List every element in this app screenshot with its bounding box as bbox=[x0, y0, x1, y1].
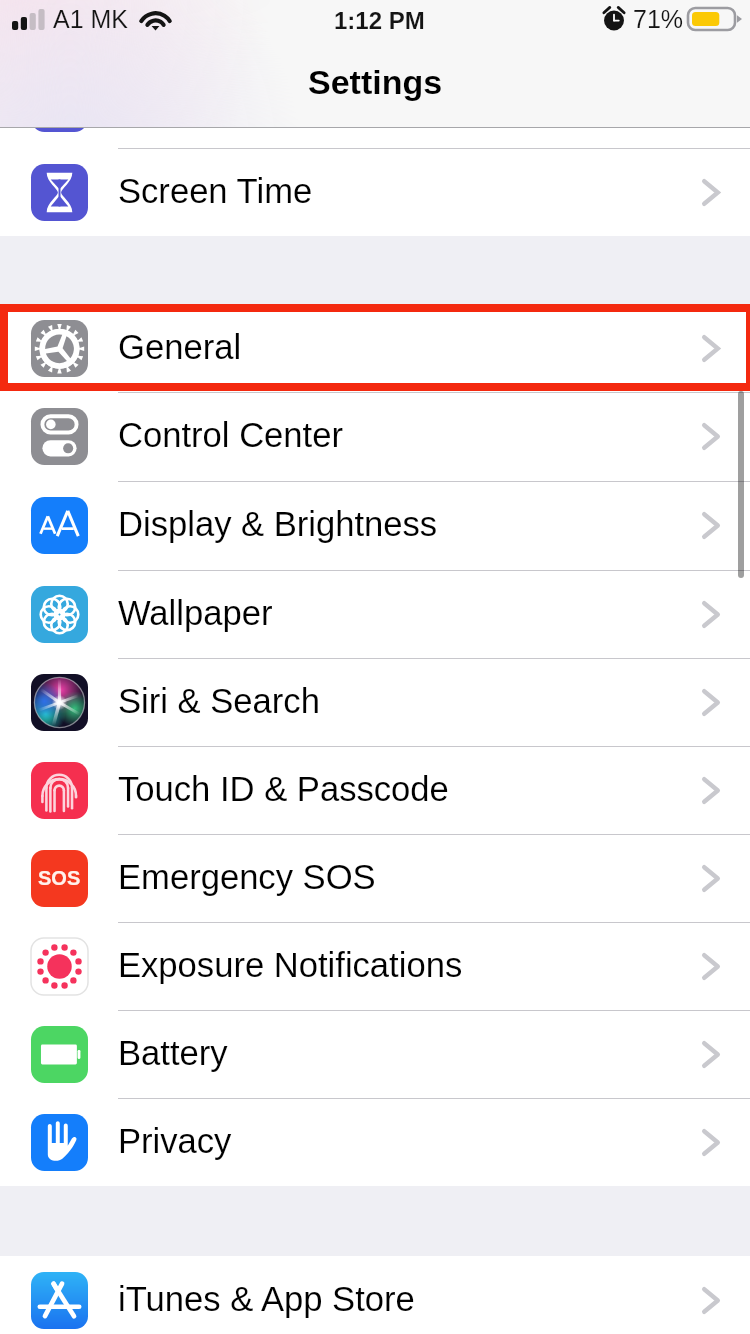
button[interactable]: Privacy bbox=[0, 1098, 750, 1186]
button[interactable]: Exposure Notifications bbox=[0, 922, 750, 1010]
staticText: A1 MK bbox=[53, 5, 129, 33]
staticText: Touch ID & Passcode bbox=[118, 770, 449, 809]
staticText: General bbox=[118, 328, 242, 367]
staticText: Privacy bbox=[118, 1122, 232, 1161]
staticText: Emergency SOS bbox=[118, 858, 376, 897]
staticText: Settings bbox=[308, 63, 443, 101]
button[interactable]: Control Center bbox=[0, 392, 750, 481]
staticText: Exposure Notifications bbox=[118, 946, 463, 985]
staticText: Wallpaper bbox=[118, 594, 273, 633]
button[interactable]: Display & Brightness bbox=[0, 481, 750, 570]
staticText: 1:12 PM bbox=[334, 7, 425, 34]
staticText: 71% bbox=[633, 5, 684, 33]
button[interactable]: General bbox=[0, 304, 750, 392]
staticText: Display & Brightness bbox=[118, 505, 438, 544]
staticText: Control Center bbox=[118, 416, 343, 455]
button[interactable]: Screen Time bbox=[0, 148, 750, 236]
button[interactable]: iTunes & App Store bbox=[0, 1256, 750, 1334]
button[interactable]: Siri & Search bbox=[0, 658, 750, 746]
button[interactable]: SOS bbox=[0, 834, 750, 922]
staticText: iTunes & App Store bbox=[118, 1280, 415, 1319]
button[interactable]: Wallpaper bbox=[0, 570, 750, 658]
staticText: SOS bbox=[38, 867, 81, 889]
staticText: Screen Time bbox=[118, 172, 313, 211]
button[interactable]: Battery bbox=[0, 1010, 750, 1098]
button[interactable]: Touch ID & Passcode bbox=[0, 746, 750, 834]
staticText: Siri & Search bbox=[118, 682, 320, 721]
staticText: Battery bbox=[118, 1034, 228, 1073]
